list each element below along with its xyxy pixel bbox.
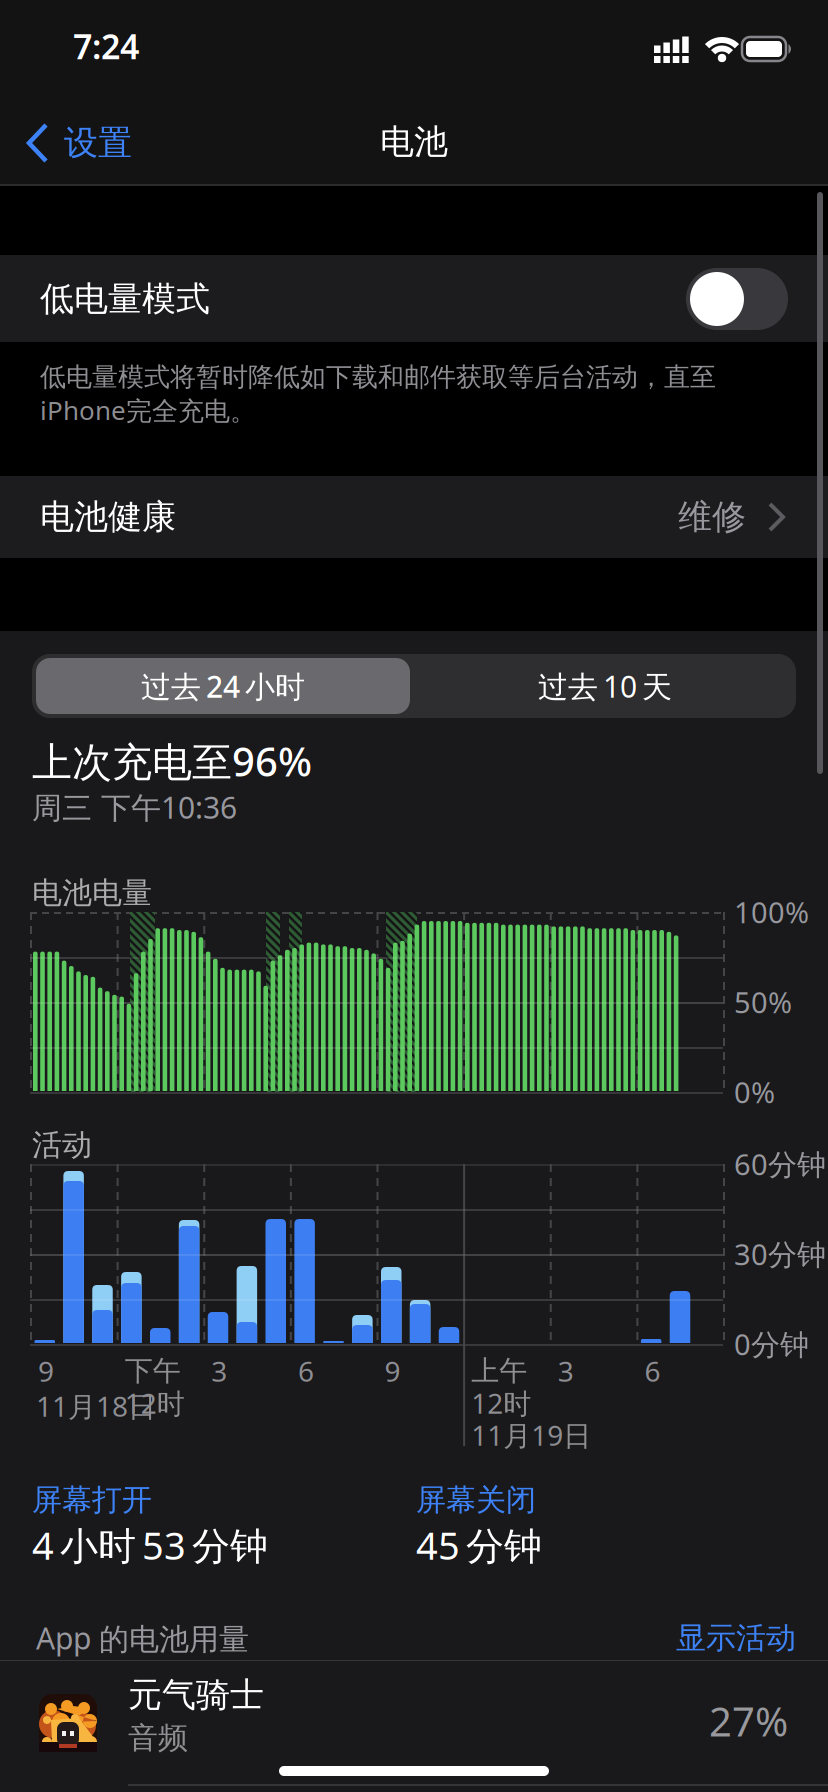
staticText: 11月19日 <box>471 1416 591 1454</box>
staticText: 12时 <box>125 1384 185 1422</box>
staticText: App 的电池用量 <box>36 1618 249 1658</box>
button[interactable]: 显示活动 <box>636 1620 796 1656</box>
staticText: 周三 下午10:36 <box>32 787 237 827</box>
button[interactable]: 过去 24 小时 <box>36 658 410 714</box>
staticText: 6 <box>298 1352 314 1390</box>
staticText: 音频 <box>128 1720 188 1756</box>
staticText: 过去 24 小时 <box>141 666 305 706</box>
staticText: 3 <box>211 1352 227 1390</box>
staticText: 上次充电至96% <box>32 734 312 787</box>
staticText: 下午 <box>125 1354 181 1388</box>
staticText: 30分钟 <box>734 1235 826 1273</box>
staticText: 低电量模式将暂时降低如下载和邮件获取等后台活动，直至 <box>40 361 716 393</box>
staticText: 100% <box>734 893 809 931</box>
staticText: 屏幕打开 <box>32 1482 152 1518</box>
staticText: 0% <box>734 1073 775 1111</box>
staticText: 9 <box>38 1352 54 1390</box>
staticText: 27% <box>709 1694 788 1747</box>
staticText: 显示活动 <box>676 1620 796 1656</box>
staticText: 60分钟 <box>734 1145 826 1183</box>
staticText: 7:24 <box>73 23 139 69</box>
staticText: 设置 <box>64 122 132 164</box>
staticText: 3 <box>558 1352 574 1390</box>
staticText: 50% <box>734 983 792 1021</box>
button[interactable]: 元气骑士 <box>0 1661 828 1785</box>
staticText: 电池健康 <box>40 496 176 538</box>
staticText: 活动 <box>32 1127 92 1163</box>
staticText: 上午 <box>471 1354 527 1388</box>
button[interactable]: 设置 <box>26 118 196 168</box>
staticText: 电池 <box>380 121 448 163</box>
button[interactable]: 电池健康 <box>0 476 828 558</box>
staticText: 45 分钟 <box>416 1520 542 1570</box>
staticText: iPhone完全充电。 <box>40 393 256 427</box>
staticText: 6 <box>644 1352 660 1390</box>
staticText: 11月18日 <box>36 1387 156 1425</box>
staticText: 电池电量 <box>32 875 152 911</box>
staticText: 低电量模式 <box>40 278 210 320</box>
staticText: 屏幕关闭 <box>416 1482 536 1518</box>
button[interactable]: 低电量模式 <box>686 268 788 330</box>
staticText: 过去 10 天 <box>538 666 672 706</box>
staticText: 0分钟 <box>734 1325 809 1363</box>
staticText: 9 <box>384 1352 400 1390</box>
button[interactable]: 过去 10 天 <box>418 658 792 714</box>
staticText: 元气骑士 <box>128 1674 264 1716</box>
staticText: 4 小时 53 分钟 <box>32 1520 268 1570</box>
staticText: 12时 <box>471 1384 531 1422</box>
staticText: 维修 <box>678 496 746 538</box>
